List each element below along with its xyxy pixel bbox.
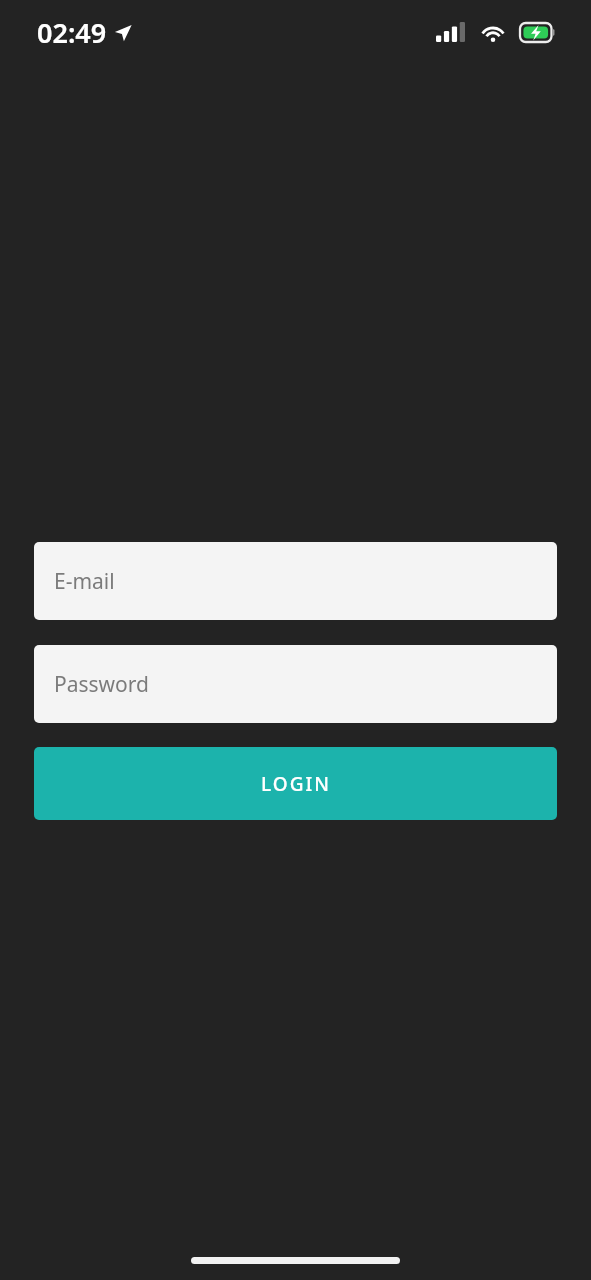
other: Battery charging: [520, 23, 555, 42]
staticText: 02:49: [37, 14, 107, 51]
button[interactable]: E-mail: [34, 542, 557, 620]
button[interactable]: LOGIN: [34, 747, 557, 820]
staticText: Password: [54, 670, 149, 699]
button[interactable]: Password: [34, 645, 557, 723]
staticText: E-mail: [54, 567, 115, 596]
staticText: LOGIN: [261, 771, 331, 797]
